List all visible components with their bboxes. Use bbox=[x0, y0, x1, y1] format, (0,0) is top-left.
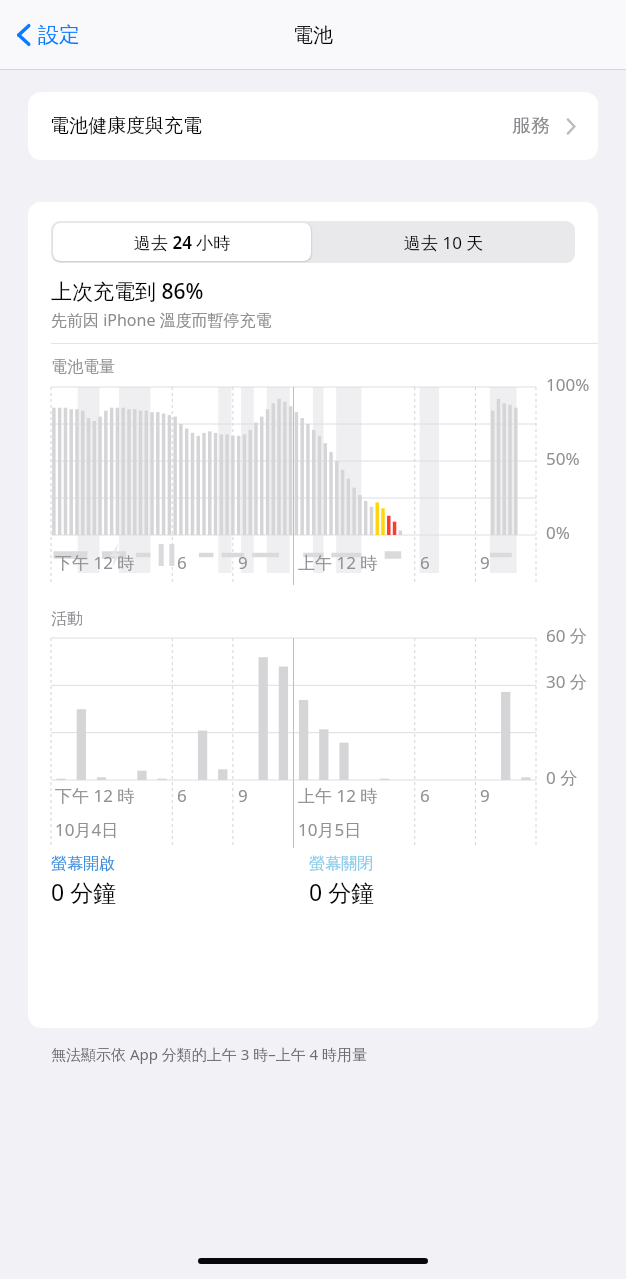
staticText: 螢幕開啟 bbox=[51, 854, 115, 874]
staticText: 6 bbox=[177, 784, 187, 807]
staticText: 設定 bbox=[38, 22, 80, 48]
staticText: 9 bbox=[480, 784, 490, 807]
staticText: 9 bbox=[480, 551, 490, 574]
staticText: 下午 12 時 bbox=[55, 551, 135, 574]
staticText: 0% bbox=[546, 521, 570, 544]
staticText: 電池健康度與充電 bbox=[50, 114, 202, 138]
staticText: 上午 12 時 bbox=[298, 551, 378, 574]
button[interactable]: 過去 10 天 bbox=[313, 221, 575, 263]
staticText: 電池 bbox=[293, 23, 333, 48]
staticText: 0 分 bbox=[546, 766, 578, 789]
button[interactable]: 電池健康度與充電 bbox=[28, 92, 598, 160]
button[interactable]: Back bbox=[10, 14, 86, 56]
staticText: 無法顯示依 App 分類的上午 3 時–上午 4 時用量 bbox=[51, 1044, 368, 1064]
staticText: 6 bbox=[420, 784, 430, 807]
staticText: 電池電量 bbox=[51, 357, 115, 377]
staticText: 0 分鐘 bbox=[51, 876, 117, 907]
staticText: 上午 12 時 bbox=[298, 784, 378, 807]
staticText: 9 bbox=[238, 551, 248, 574]
staticText: 過去 24 小時 bbox=[134, 231, 231, 254]
staticText: 先前因 iPhone 溫度而暫停充電 bbox=[51, 309, 272, 331]
staticText: 0 分鐘 bbox=[309, 876, 375, 907]
staticText: 6 bbox=[177, 551, 187, 574]
staticText: 10月5日 bbox=[298, 818, 362, 841]
staticText: 9 bbox=[238, 784, 248, 807]
staticText: 10月4日 bbox=[55, 818, 119, 841]
button[interactable]: 過去 24 小時 bbox=[53, 223, 311, 261]
staticText: 30 分 bbox=[546, 670, 587, 693]
staticText: 下午 12 時 bbox=[55, 784, 135, 807]
staticText: 6 bbox=[420, 551, 430, 574]
staticText: 上次充電到 86% bbox=[51, 277, 204, 306]
other: Back bbox=[16, 22, 32, 48]
staticText: 服務 bbox=[512, 114, 550, 138]
staticText: 過去 10 天 bbox=[404, 231, 484, 254]
staticText: 活動 bbox=[51, 609, 83, 629]
staticText: 螢幕關閉 bbox=[309, 854, 373, 874]
staticText: 50% bbox=[546, 447, 580, 470]
staticText: 60 分 bbox=[546, 624, 587, 647]
staticText: 100% bbox=[546, 373, 590, 396]
